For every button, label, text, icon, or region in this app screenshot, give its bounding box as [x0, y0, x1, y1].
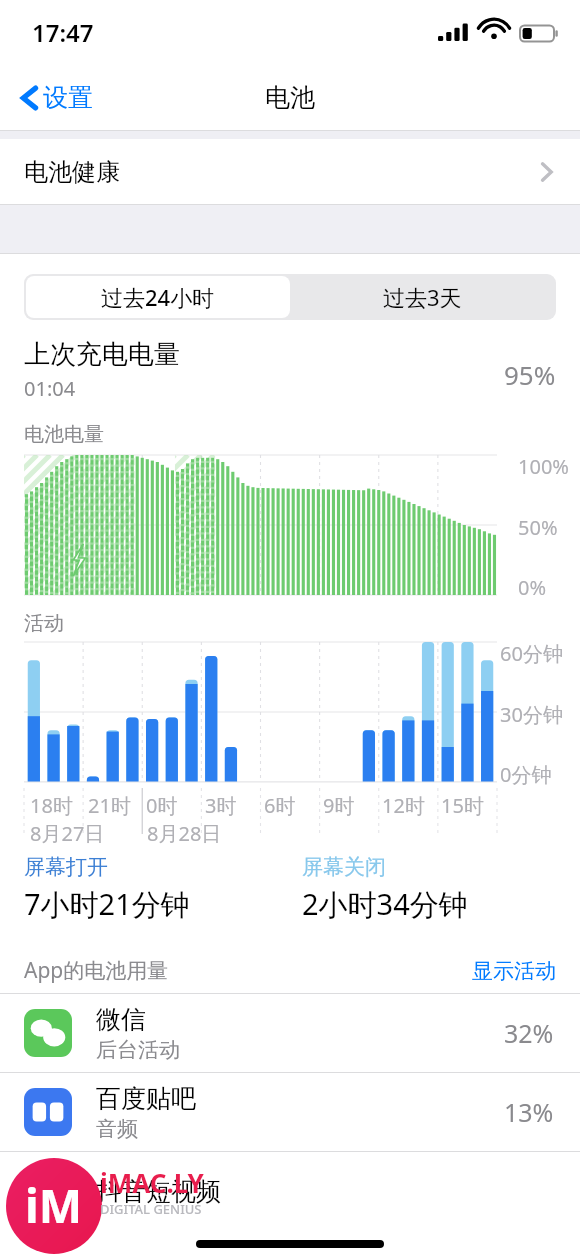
staticText: 01:04: [24, 375, 76, 402]
staticText: 电池电量: [24, 422, 104, 447]
staticText: 0分钟: [500, 761, 552, 788]
staticText: 3时: [205, 792, 237, 819]
staticText: App的电池用量: [24, 956, 169, 985]
staticText: 7小时21分钟: [24, 884, 190, 924]
staticText: 50%: [518, 514, 558, 541]
button[interactable]: 电池健康: [0, 139, 580, 205]
button[interactable]: 设置: [12, 76, 99, 119]
staticText: 95%: [504, 357, 556, 392]
staticText: 电池健康: [24, 157, 120, 187]
staticText: 屏幕打开: [24, 854, 108, 880]
button[interactable]: 微信: [0, 994, 580, 1072]
staticText: 过去24小时: [101, 282, 215, 312]
staticText: 13%: [504, 1095, 554, 1129]
staticText: 抖音短视频: [96, 1176, 221, 1207]
staticText: 0时: [146, 792, 178, 819]
staticText: 电池: [265, 82, 315, 113]
staticText: 设置: [43, 82, 93, 113]
staticText: 15时: [441, 792, 484, 819]
button[interactable]: 过去3天: [290, 276, 554, 318]
staticText: 后台活动: [96, 1037, 180, 1063]
button[interactable]: 百度贴吧: [0, 1073, 580, 1151]
staticText: 活动: [24, 611, 64, 636]
staticText: 微信: [96, 1004, 146, 1035]
staticText: DIGITAL GENIUS: [100, 1200, 202, 1218]
staticText: 0%: [518, 574, 547, 601]
staticText: 显示活动: [472, 958, 556, 984]
staticText: 21时: [88, 792, 131, 819]
staticText: 9时: [323, 792, 355, 819]
staticText: 屏幕关闭: [302, 854, 386, 880]
staticText: 6时: [264, 792, 296, 819]
button[interactable]: 过去24小时: [26, 276, 290, 318]
staticText: 音频: [96, 1116, 138, 1142]
staticText: 8月28日: [147, 820, 222, 844]
staticText: 8月27日: [30, 820, 105, 844]
staticText: iM: [25, 1174, 83, 1237]
staticText: iMAC.LY: [100, 1165, 204, 1200]
button[interactable]: 抖音短视频: [0, 1152, 580, 1230]
staticText: 上次充电电量: [24, 338, 180, 371]
staticText: 60分钟: [500, 640, 563, 667]
staticText: 12时: [382, 792, 425, 819]
staticText: 2小时34分钟: [302, 884, 468, 924]
staticText: 18时: [30, 792, 73, 819]
staticText: 100%: [518, 453, 569, 480]
staticText: 30分钟: [500, 701, 563, 728]
staticText: 32%: [504, 1016, 554, 1050]
button[interactable]: 显示活动: [472, 958, 580, 984]
staticText: 过去3天: [383, 282, 462, 312]
staticText: 百度贴吧: [96, 1083, 196, 1114]
staticText: 17:47: [32, 16, 94, 49]
